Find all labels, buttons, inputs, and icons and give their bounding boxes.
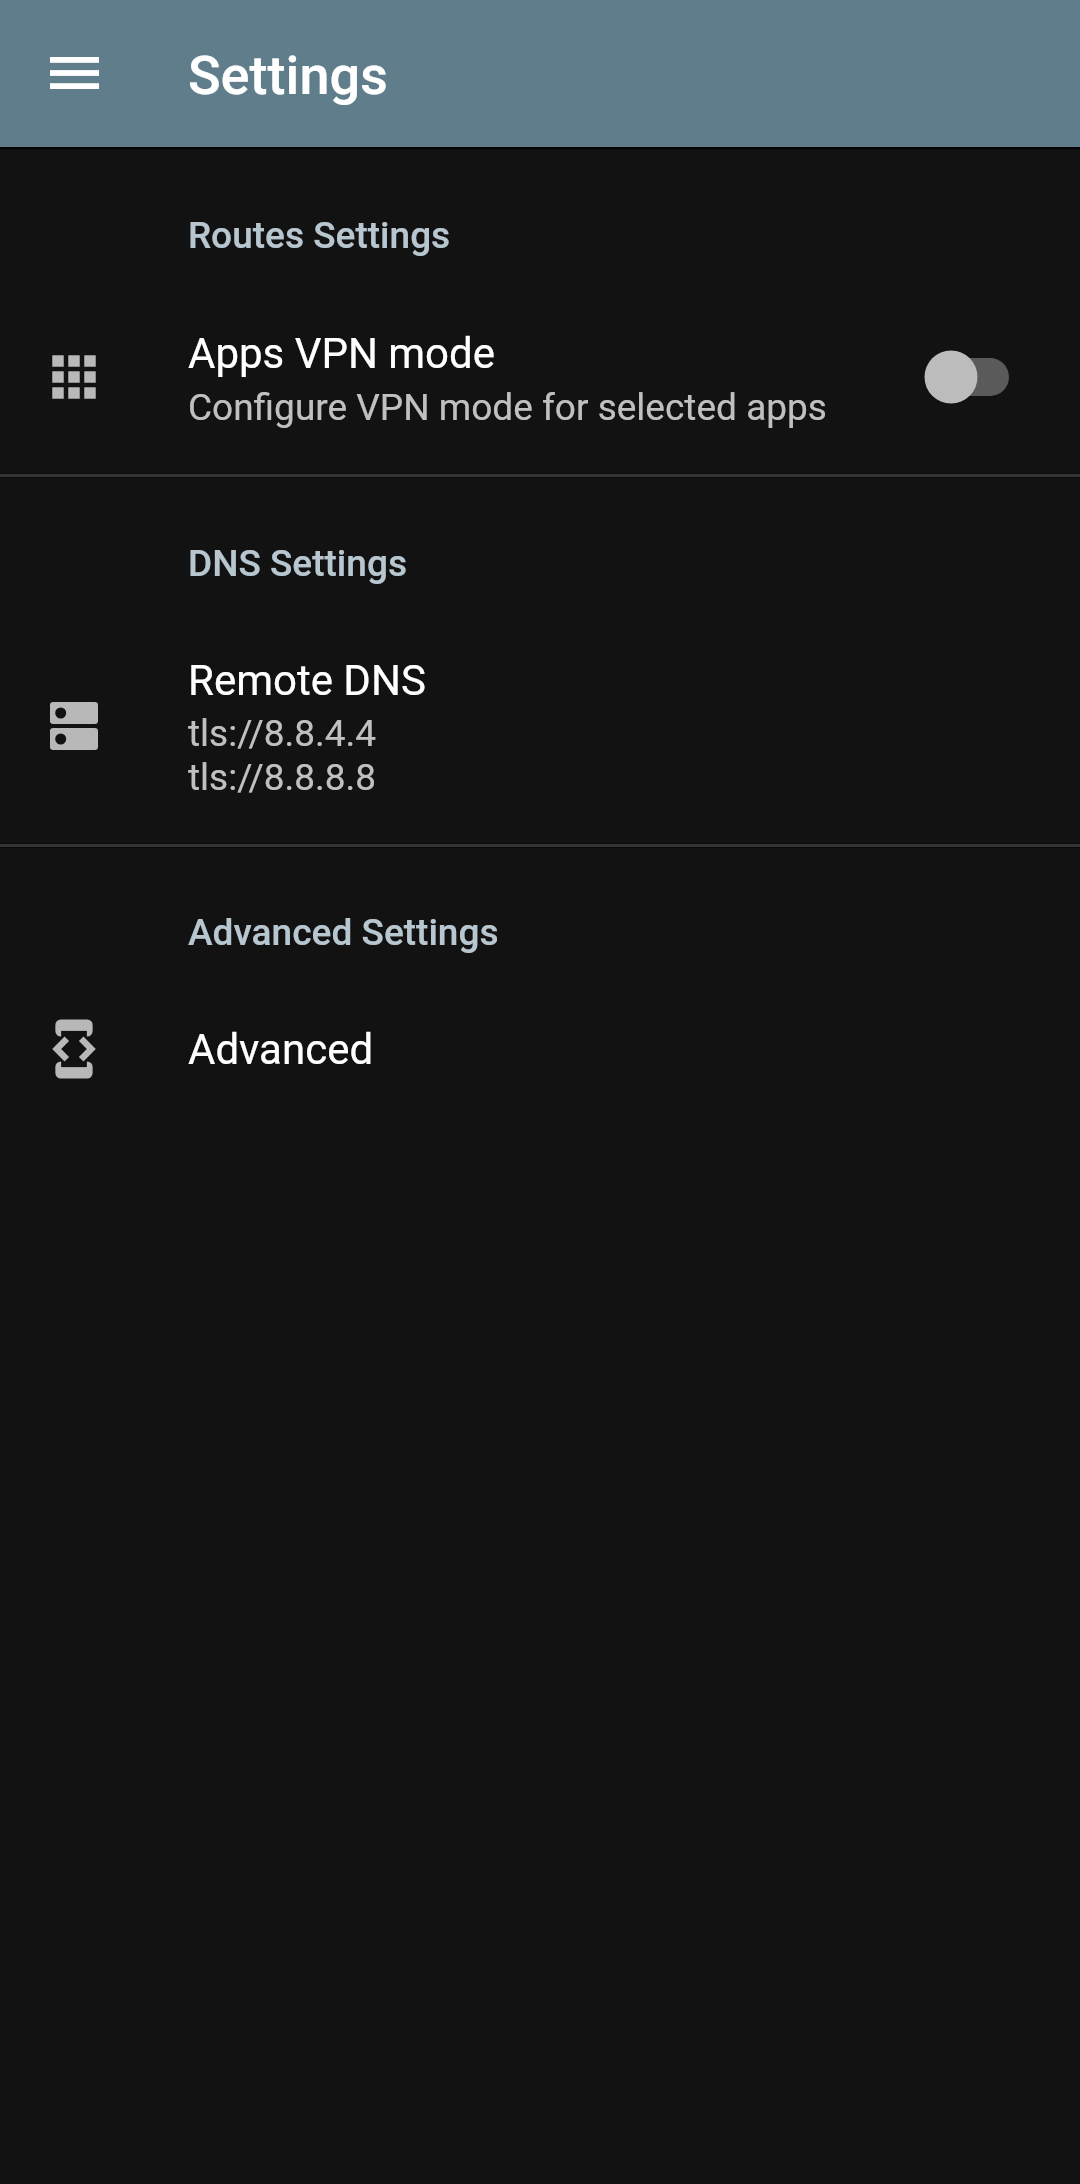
button[interactable]: Open navigation menu [36, 34, 112, 110]
staticText: Apps VPN mode [188, 329, 496, 378]
staticText: Settings [188, 44, 388, 107]
button[interactable]: Apps VPN mode [0, 300, 1080, 472]
staticText: DNS Settings [188, 542, 408, 585]
staticText: Configure VPN mode for selected apps [188, 386, 827, 429]
button[interactable]: Advanced [0, 998, 1080, 1102]
button[interactable]: Toggle Apps VPN mode [925, 350, 1009, 404]
staticText: Remote DNS [188, 656, 426, 705]
button[interactable]: Remote DNS [0, 628, 1080, 842]
staticText: Advanced Settings [188, 911, 499, 954]
staticText: Routes Settings [188, 214, 451, 257]
staticText: tls://8.8.4.4 tls://8.8.8.8 [188, 712, 377, 799]
staticText: Advanced [188, 1025, 374, 1074]
